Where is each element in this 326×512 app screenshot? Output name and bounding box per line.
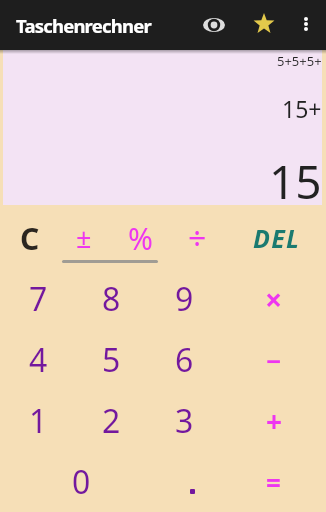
staticText: DEL [253,221,301,255]
staticText: ÷ [188,216,207,260]
button[interactable]: 8 [86,274,136,324]
button[interactable] [291,9,321,39]
button[interactable]: 9 [159,274,209,324]
button[interactable]: 3 [159,396,209,446]
button[interactable]: 1 [13,396,63,446]
staticText: Taschenrechner [16,13,151,38]
button[interactable]: DEL [243,216,311,260]
staticText: = [266,465,281,500]
staticText: 15 [269,150,322,213]
staticText: + [266,402,283,440]
button[interactable] [195,6,233,44]
button[interactable]: 5 [86,335,136,385]
button[interactable]: C [8,216,52,260]
staticText: % [128,218,153,259]
button[interactable]: ± [62,215,106,259]
staticText: 4 [29,338,48,382]
staticText: 3 [175,399,194,443]
button[interactable]: + [249,396,299,446]
staticText: 2 [102,399,121,443]
staticText: − [266,343,282,378]
button[interactable]: % [118,216,162,260]
button[interactable]: × [249,274,299,324]
button[interactable]: 0 [56,457,106,507]
staticText: C [20,218,40,259]
staticText: 6 [175,338,194,382]
staticText: 8 [102,277,121,321]
staticText: 15+ [282,93,322,124]
staticText: 5+5+5+ [277,52,322,70]
staticText: 9 [175,277,194,321]
button[interactable]: 2 [86,396,136,446]
staticText: 0 [72,460,91,504]
button[interactable]: = [248,457,298,507]
button[interactable] [172,470,212,510]
button[interactable] [245,6,283,44]
staticText: 7 [29,277,48,321]
button[interactable]: − [249,335,299,385]
staticText: × [265,279,283,320]
button[interactable]: 7 [13,274,63,324]
staticText: 5 [102,338,121,382]
staticText: 1 [29,399,48,443]
button[interactable]: 4 [13,335,63,385]
button[interactable]: 6 [159,335,209,385]
staticText: ± [76,219,92,256]
button[interactable]: ÷ [175,216,219,260]
